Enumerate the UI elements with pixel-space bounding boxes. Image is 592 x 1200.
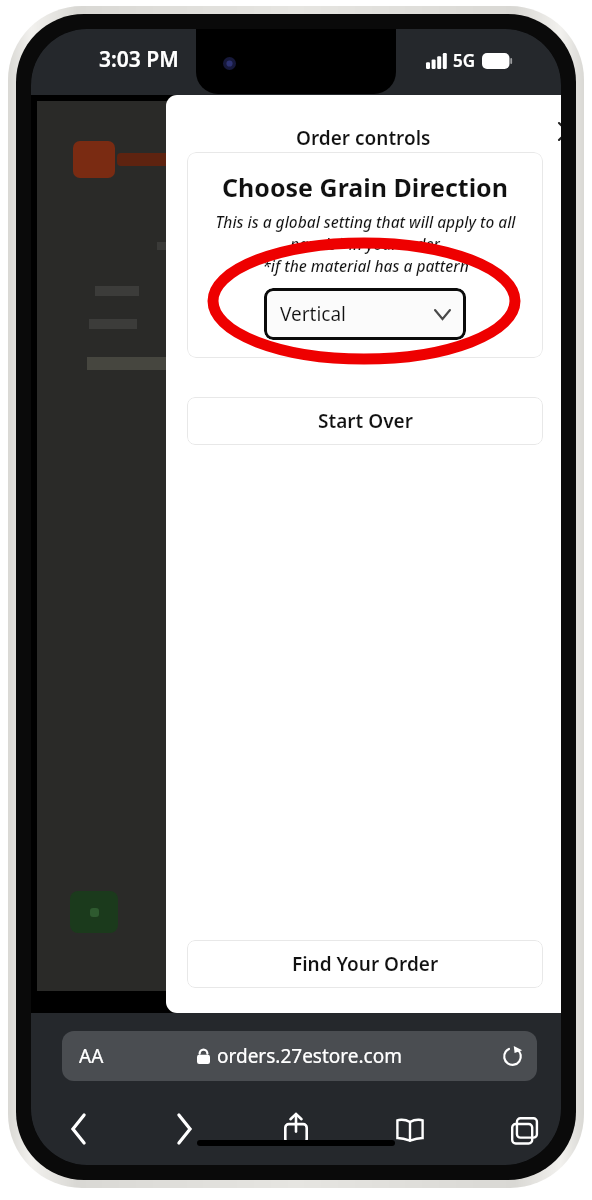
button[interactable]: Forward [156,1101,212,1157]
button[interactable]: AA [62,1031,537,1081]
staticText: Vertical [280,301,347,327]
staticText: Find Your Order [292,951,439,977]
button[interactable]: Back [51,1101,107,1157]
staticText: Choose Grain Direction [222,170,508,204]
staticText: orders.27estore.com [217,1043,402,1069]
button[interactable]: Bookmarks [381,1101,439,1159]
staticText: This is a global setting that will apply… [215,211,516,232]
button[interactable]: Find Your Order [187,940,543,988]
staticText: panels* in your order [290,233,440,254]
button[interactable]: Start Over [187,397,543,445]
button[interactable]: Tabs [495,1101,553,1159]
staticText: *if the material has a pattern [262,255,469,276]
staticText: 5G [453,49,476,72]
button[interactable]: Reload page [495,1039,529,1073]
button[interactable]: Close [545,109,561,153]
button[interactable]: Share [267,1099,325,1157]
button[interactable]: Vertical [264,288,466,340]
staticText: Order controls [296,125,431,151]
staticText: AA [79,1043,104,1069]
staticText: 3:03 PM [99,45,179,74]
staticText: Start Over [318,408,413,434]
